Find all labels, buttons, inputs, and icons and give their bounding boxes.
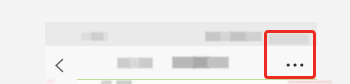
button[interactable]: Back [45, 52, 73, 78]
button[interactable]: More options [283, 54, 307, 76]
